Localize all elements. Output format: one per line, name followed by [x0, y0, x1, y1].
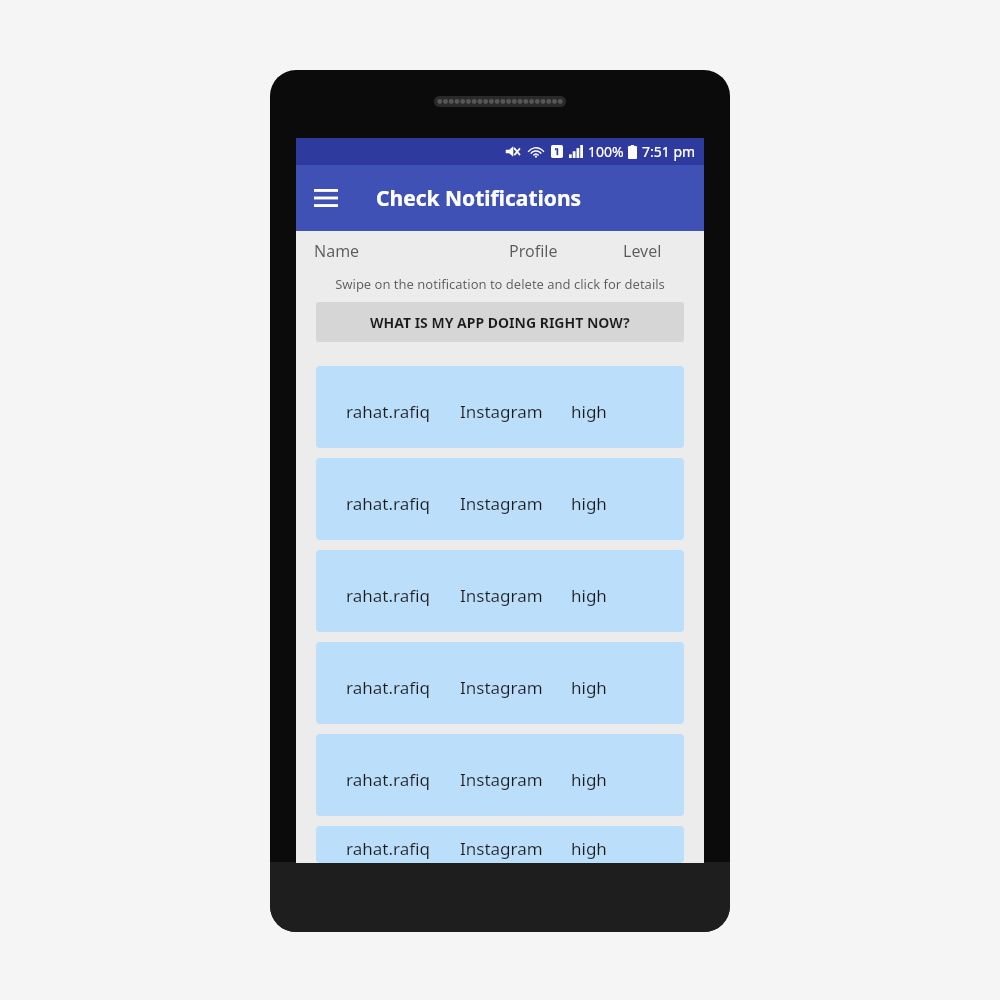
staticText: Level — [623, 240, 662, 262]
staticText: high — [571, 400, 607, 423]
staticText: Instagram — [460, 492, 543, 515]
button[interactable]: rahat.rafiq — [316, 826, 684, 863]
staticText: rahat.rafiq — [346, 768, 430, 791]
staticText: Instagram — [460, 584, 543, 607]
staticText: Check Notifications — [376, 184, 582, 213]
staticText: Instagram — [460, 676, 543, 699]
staticText: rahat.rafiq — [346, 492, 430, 515]
staticText: WHAT IS MY APP DOING RIGHT NOW? — [370, 313, 630, 332]
button[interactable]: rahat.rafiq — [316, 642, 684, 724]
staticText: rahat.rafiq — [346, 837, 430, 860]
button[interactable]: rahat.rafiq — [316, 458, 684, 540]
staticText: rahat.rafiq — [346, 584, 430, 607]
button[interactable]: rahat.rafiq — [316, 734, 684, 816]
staticText: Name — [314, 240, 360, 262]
button[interactable]: rahat.rafiq — [316, 366, 684, 448]
staticText: high — [571, 584, 607, 607]
staticText: Instagram — [460, 400, 543, 423]
staticText: 7:51 pm — [642, 142, 696, 161]
staticText: rahat.rafiq — [346, 400, 430, 423]
staticText: rahat.rafiq — [346, 676, 430, 699]
staticText: Instagram — [460, 837, 543, 860]
button[interactable]: WHAT IS MY APP DOING RIGHT NOW? — [316, 302, 684, 342]
button[interactable]: Open navigation menu — [304, 176, 348, 220]
staticText: high — [571, 837, 607, 860]
staticText: 100% — [588, 142, 624, 161]
staticText: high — [571, 768, 607, 791]
staticText: Instagram — [460, 768, 543, 791]
button[interactable]: rahat.rafiq — [316, 550, 684, 632]
staticText: high — [571, 676, 607, 699]
staticText: high — [571, 492, 607, 515]
staticText: Swipe on the notification to delete and … — [335, 275, 665, 293]
staticText: Profile — [509, 240, 558, 262]
